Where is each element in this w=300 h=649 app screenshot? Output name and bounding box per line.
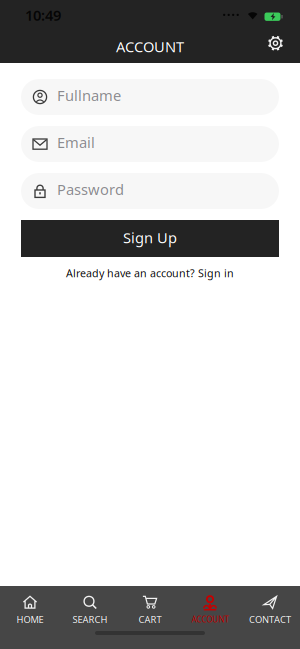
staticText: Fullname [57,85,121,105]
button[interactable]: SEARCH [60,594,120,626]
button[interactable]: HOME [0,594,60,626]
staticText: HOME [16,613,43,626]
staticText: ACCOUNT [191,614,228,625]
button[interactable]: CONTACT [240,594,300,626]
staticText: CART [138,613,161,626]
staticText: Already have an account? Sign in [66,266,234,280]
staticText: Email [57,132,95,152]
staticText: Password [57,179,124,199]
staticText: ACCOUNT [116,37,184,56]
button[interactable]: Sign Up [0,220,300,257]
button[interactable]: ACCOUNT [180,594,240,626]
button[interactable]: CART [120,594,180,626]
button[interactable]: Settings [267,35,300,52]
staticText: SEARCH [72,613,107,626]
staticText: Sign Up [123,228,177,247]
staticText: 10:49 [25,5,61,25]
button[interactable]: Already have an account? Sign in [66,266,234,280]
staticText: CONTACT [249,613,291,626]
